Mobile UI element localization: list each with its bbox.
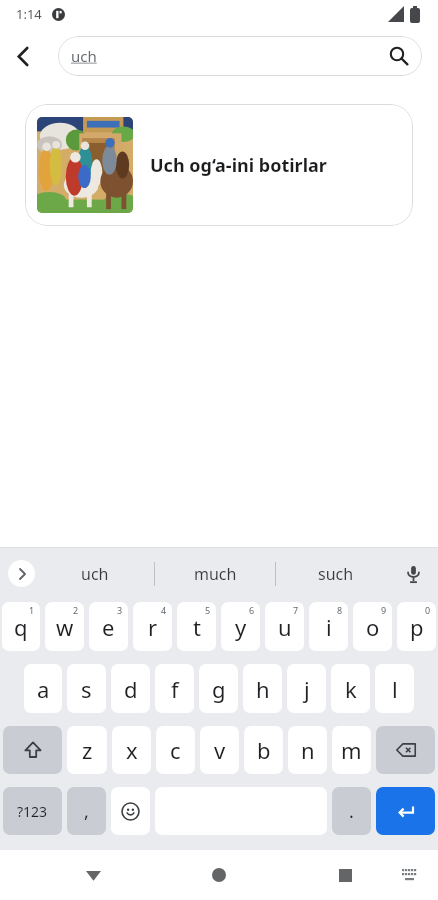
button[interactable]: uch — [35, 547, 154, 600]
staticText: n — [301, 735, 315, 765]
button[interactable] — [376, 726, 435, 774]
staticText: v — [214, 735, 226, 765]
button[interactable] — [111, 787, 150, 835]
button[interactable]: k — [331, 664, 370, 713]
button[interactable]: b — [244, 726, 283, 774]
staticText: f — [171, 674, 179, 704]
button[interactable]: n — [288, 726, 327, 774]
button[interactable]: o — [353, 602, 392, 651]
staticText: m — [341, 735, 362, 765]
button[interactable]: uch — [58, 36, 422, 76]
button[interactable] — [396, 862, 422, 888]
staticText: c — [170, 735, 181, 765]
button[interactable]: such — [276, 547, 396, 600]
button[interactable]: . — [332, 787, 371, 835]
staticText: r — [148, 612, 158, 642]
staticText: e — [102, 612, 115, 642]
staticText: much — [194, 563, 237, 585]
button[interactable]: v — [200, 726, 239, 774]
button[interactable]: a — [24, 664, 62, 713]
button[interactable]: e — [89, 602, 128, 651]
button[interactable]: g — [199, 664, 238, 713]
staticText: o — [366, 612, 380, 642]
staticText: b — [257, 735, 271, 765]
button[interactable]: p — [397, 602, 436, 651]
staticText: 5 — [205, 604, 211, 616]
button[interactable]: h — [243, 664, 282, 713]
button[interactable]: y — [221, 602, 260, 651]
staticText: s — [81, 674, 92, 704]
staticText: uch — [71, 46, 97, 66]
staticText: , — [84, 799, 89, 824]
staticText: 3 — [117, 604, 123, 616]
button[interactable]: ?123 — [3, 787, 62, 835]
button[interactable]: w — [45, 602, 84, 651]
staticText: j — [304, 674, 310, 704]
button[interactable]: x — [112, 726, 151, 774]
button[interactable] — [78, 860, 108, 890]
button[interactable]: c — [156, 726, 195, 774]
staticText: 1 — [29, 604, 35, 616]
button[interactable]: j — [287, 664, 326, 713]
staticText: ?123 — [17, 802, 48, 821]
button[interactable]: i — [309, 602, 348, 651]
button[interactable] — [8, 560, 35, 587]
staticText: i — [326, 612, 332, 642]
staticText: 0 — [425, 604, 431, 616]
staticText: such — [318, 563, 354, 585]
staticText: 4 — [161, 604, 167, 616]
staticText: l — [392, 674, 398, 704]
staticText: t — [193, 612, 201, 642]
button[interactable]: r — [133, 602, 172, 651]
staticText: 1:14 — [16, 5, 42, 23]
staticText: g — [212, 674, 226, 704]
staticText: 2 — [73, 604, 79, 616]
staticText: a — [37, 674, 50, 704]
button[interactable] — [6, 39, 40, 73]
staticText: 8 — [337, 604, 343, 616]
button[interactable]: u — [265, 602, 304, 651]
button[interactable] — [396, 557, 430, 591]
button[interactable]: t — [177, 602, 216, 651]
staticText: x — [126, 735, 138, 765]
staticText: Uch og‘a-ini botirlar — [150, 153, 327, 178]
button[interactable]: l — [375, 664, 414, 713]
button[interactable]: Uch og‘a-ini botirlar — [25, 104, 413, 226]
staticText: p — [410, 612, 424, 642]
staticText: 6 — [249, 604, 255, 616]
button[interactable] — [376, 787, 435, 835]
button[interactable]: m — [332, 726, 371, 774]
staticText: z — [82, 735, 93, 765]
staticText: d — [124, 674, 138, 704]
button[interactable] — [3, 726, 62, 774]
button[interactable]: much — [155, 547, 275, 600]
staticText: k — [345, 674, 357, 704]
staticText: 9 — [381, 604, 387, 616]
button[interactable]: z — [67, 726, 107, 774]
button[interactable]: q — [2, 602, 40, 651]
button[interactable]: s — [67, 664, 106, 713]
button[interactable] — [330, 860, 360, 890]
button[interactable]: d — [111, 664, 150, 713]
button[interactable]: , — [67, 787, 106, 835]
staticText: u — [278, 612, 292, 642]
staticText: . — [349, 799, 354, 824]
staticText: q — [14, 612, 28, 642]
staticText: y — [235, 612, 247, 642]
staticText: h — [256, 674, 270, 704]
staticText: 7 — [293, 604, 299, 616]
button[interactable]: f — [155, 664, 194, 713]
staticText: uch — [81, 563, 109, 585]
staticText: w — [56, 612, 74, 642]
button[interactable] — [204, 860, 234, 890]
